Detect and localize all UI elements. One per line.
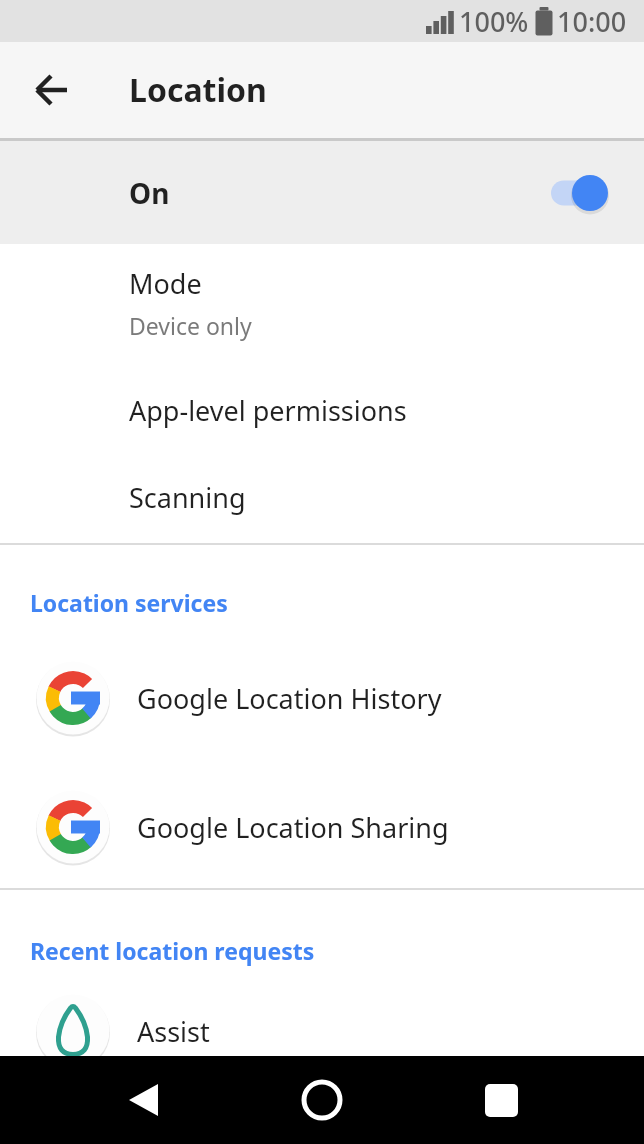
button[interactable] xyxy=(22,60,82,120)
staticText: Google Location Sharing xyxy=(137,809,449,846)
button[interactable] xyxy=(551,172,608,214)
button[interactable]: Google Location History xyxy=(0,661,644,735)
staticText: 10:00 xyxy=(557,3,627,40)
button[interactable]: Google Location Sharing xyxy=(0,790,644,864)
button[interactable]: On xyxy=(0,141,644,244)
staticText: Device only xyxy=(129,310,252,341)
staticText: Google Location History xyxy=(137,680,442,717)
staticText: Location xyxy=(129,68,267,112)
button[interactable]: Scanning xyxy=(0,458,644,536)
button[interactable]: Mode xyxy=(0,244,644,362)
staticText: Assist xyxy=(137,1013,210,1050)
staticText: Recent location requests xyxy=(30,935,315,966)
staticText: On xyxy=(129,174,170,212)
button[interactable] xyxy=(99,1056,187,1144)
button[interactable]: App-level permissions xyxy=(0,362,644,458)
staticText: Location services xyxy=(30,587,228,618)
button[interactable] xyxy=(457,1056,545,1144)
staticText: 100% xyxy=(459,3,529,40)
staticText: Mode xyxy=(129,265,202,302)
button[interactable] xyxy=(278,1056,366,1144)
staticText: App-level permissions xyxy=(129,392,407,429)
staticText: Scanning xyxy=(129,479,246,516)
button[interactable]: Assist xyxy=(0,994,644,1068)
